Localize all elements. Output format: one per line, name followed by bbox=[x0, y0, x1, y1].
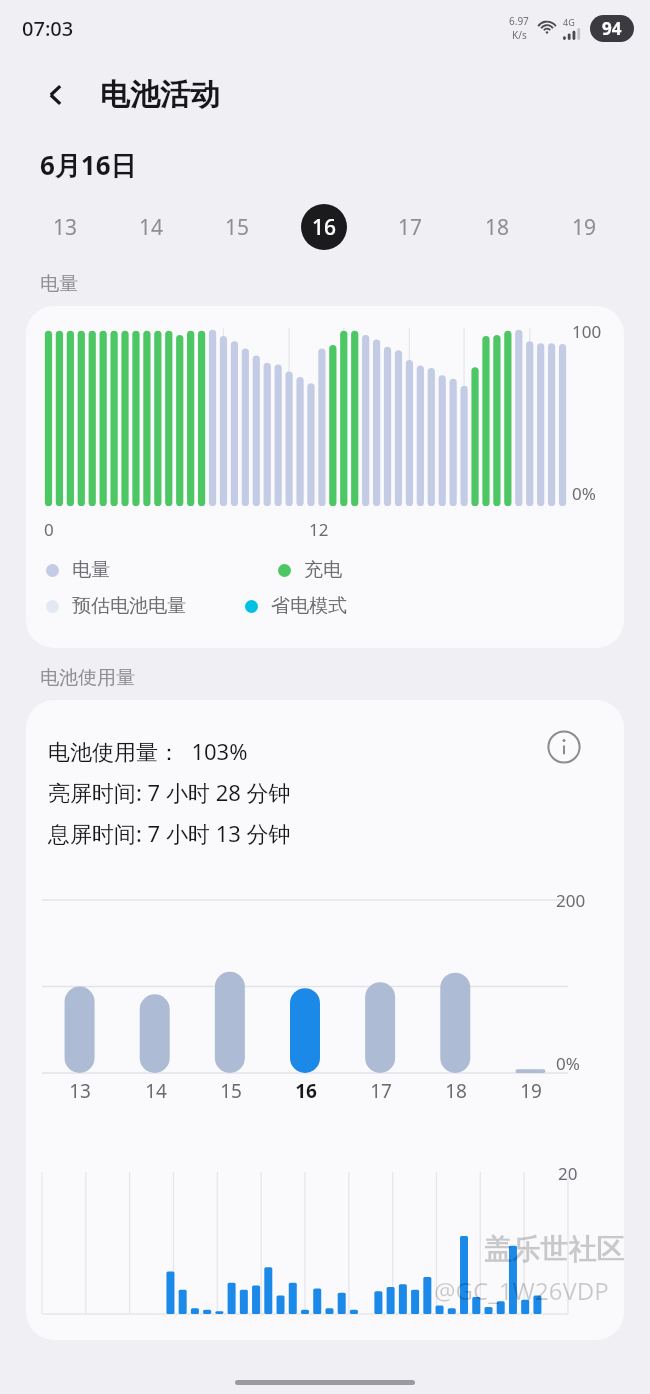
staticText: 6月16日 bbox=[40, 147, 137, 183]
staticText: 20 bbox=[558, 1162, 578, 1185]
staticText: 19 bbox=[520, 1078, 542, 1104]
staticText: 94 bbox=[602, 17, 622, 40]
staticText: 13 bbox=[53, 213, 78, 242]
staticText: 电池使用量 bbox=[40, 666, 135, 690]
staticText: K/s bbox=[512, 28, 527, 42]
staticText: 15 bbox=[220, 1078, 242, 1104]
staticText: 13 bbox=[69, 1078, 91, 1104]
staticText: 100 bbox=[572, 320, 602, 343]
staticText: 预估电池电量 bbox=[72, 594, 186, 618]
button[interactable]: 13 bbox=[22, 196, 108, 258]
button[interactable]: 17 bbox=[367, 196, 454, 258]
button[interactable]: 15 bbox=[194, 196, 280, 258]
staticText: 200 bbox=[556, 889, 586, 912]
staticText: 19 bbox=[572, 213, 597, 242]
staticText: 14 bbox=[139, 213, 164, 242]
staticText: 盖乐世社区 bbox=[484, 1232, 624, 1267]
staticText: 17 bbox=[398, 213, 423, 242]
staticText: 省电模式 bbox=[271, 594, 347, 618]
staticText: 电量 bbox=[40, 272, 78, 296]
staticText: 6.97 bbox=[509, 14, 529, 28]
staticText: @GC_1W26VDP bbox=[434, 1274, 609, 1307]
button[interactable]: 18 bbox=[454, 196, 541, 258]
button[interactable]: 返回 bbox=[34, 73, 78, 117]
staticText: 电池活动 bbox=[100, 76, 220, 114]
staticText: 15 bbox=[225, 213, 250, 242]
staticText: 12 bbox=[309, 518, 329, 541]
staticText: 0% bbox=[572, 482, 596, 505]
staticText: 18 bbox=[445, 1078, 467, 1104]
staticText: 16 bbox=[312, 213, 337, 242]
staticText: 4G bbox=[563, 16, 575, 28]
staticText: 0% bbox=[556, 1052, 580, 1075]
button[interactable]: 14 bbox=[108, 196, 194, 258]
staticText: 14 bbox=[145, 1078, 167, 1104]
staticText: 07:03 bbox=[22, 15, 74, 42]
button[interactable]: 100 bbox=[26, 306, 624, 648]
staticText: 18 bbox=[485, 213, 510, 242]
staticText: 亮屏时间: 7 小时 28 分钟 bbox=[48, 777, 291, 807]
button[interactable]: 19 bbox=[541, 196, 628, 258]
button[interactable]: 16 bbox=[280, 196, 367, 258]
button[interactable]: 电池使用量： 103% bbox=[26, 700, 624, 1340]
staticText: 17 bbox=[370, 1078, 392, 1104]
staticText: 电量 bbox=[72, 558, 110, 582]
staticText: 0 bbox=[44, 518, 54, 541]
staticText: 息屏时间: 7 小时 13 分钟 bbox=[48, 818, 291, 848]
staticText: 充电 bbox=[304, 558, 342, 582]
staticText: 16 bbox=[295, 1078, 317, 1104]
button[interactable]: 信息 bbox=[541, 724, 587, 770]
staticText: 电池使用量： 103% bbox=[48, 736, 248, 766]
